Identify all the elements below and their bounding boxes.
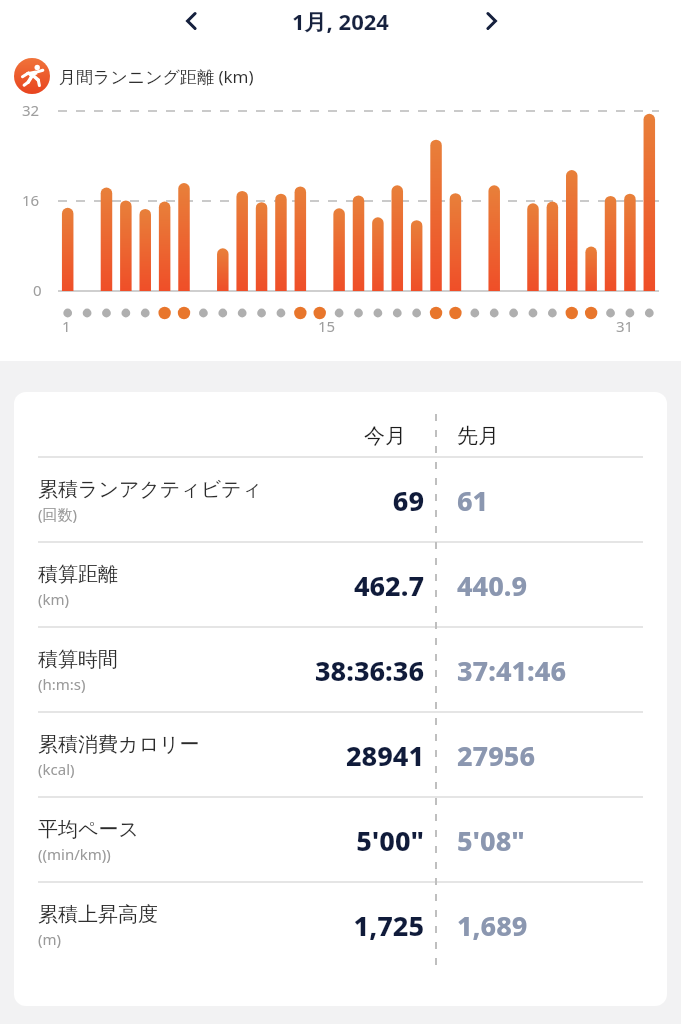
staticText: 1,689 <box>457 907 528 944</box>
button[interactable]: 積算距離 <box>14 543 667 627</box>
staticText: (m) <box>38 929 62 949</box>
staticText: 28941 <box>345 737 424 774</box>
button[interactable]: 積算時間 <box>14 628 667 712</box>
staticText: 27956 <box>457 737 536 774</box>
staticText: 5'00" <box>356 822 424 859</box>
staticText: 38:36:36 <box>314 652 424 689</box>
staticText: 累積ランアクティビティ <box>38 477 263 502</box>
staticText: 61 <box>457 482 489 519</box>
staticText: ((min/km)) <box>38 844 111 864</box>
staticText: 累積上昇高度 <box>38 902 158 927</box>
staticText: (kcal) <box>38 759 75 779</box>
staticText: (km) <box>38 589 70 609</box>
button[interactable]: 累積ランアクティビティ <box>14 458 667 542</box>
staticText: 1 <box>62 316 71 336</box>
staticText: 440.9 <box>457 567 528 604</box>
staticText: 32 <box>22 100 40 120</box>
staticText: 462.7 <box>353 567 424 604</box>
staticText: 平均ペース <box>38 817 139 842</box>
button[interactable]: Next month <box>469 0 513 42</box>
staticText: 累積消費カロリー <box>38 732 200 757</box>
staticText: 先月 <box>457 423 499 449</box>
staticText: 1,725 <box>353 907 424 944</box>
staticText: 15 <box>318 316 336 336</box>
staticText: 月間ランニング距離 (km) <box>59 65 254 88</box>
button[interactable]: 累積消費カロリー <box>14 713 667 797</box>
staticText: 1月, 2024 <box>292 6 389 36</box>
staticText: 69 <box>392 482 424 519</box>
button[interactable]: Previous month <box>170 0 214 42</box>
staticText: (h:m:s) <box>38 674 86 694</box>
staticText: (回数) <box>38 504 78 524</box>
staticText: 31 <box>616 316 634 336</box>
staticText: 0 <box>33 280 42 300</box>
button[interactable]: 累積上昇高度 <box>14 883 667 967</box>
staticText: 16 <box>22 190 40 210</box>
button[interactable]: 平均ペース <box>14 798 667 882</box>
staticText: 今月 <box>364 423 406 449</box>
staticText: 5'08" <box>457 822 525 859</box>
staticText: 積算時間 <box>38 647 118 672</box>
staticText: 37:41:46 <box>457 652 567 689</box>
staticText: 積算距離 <box>38 562 118 587</box>
